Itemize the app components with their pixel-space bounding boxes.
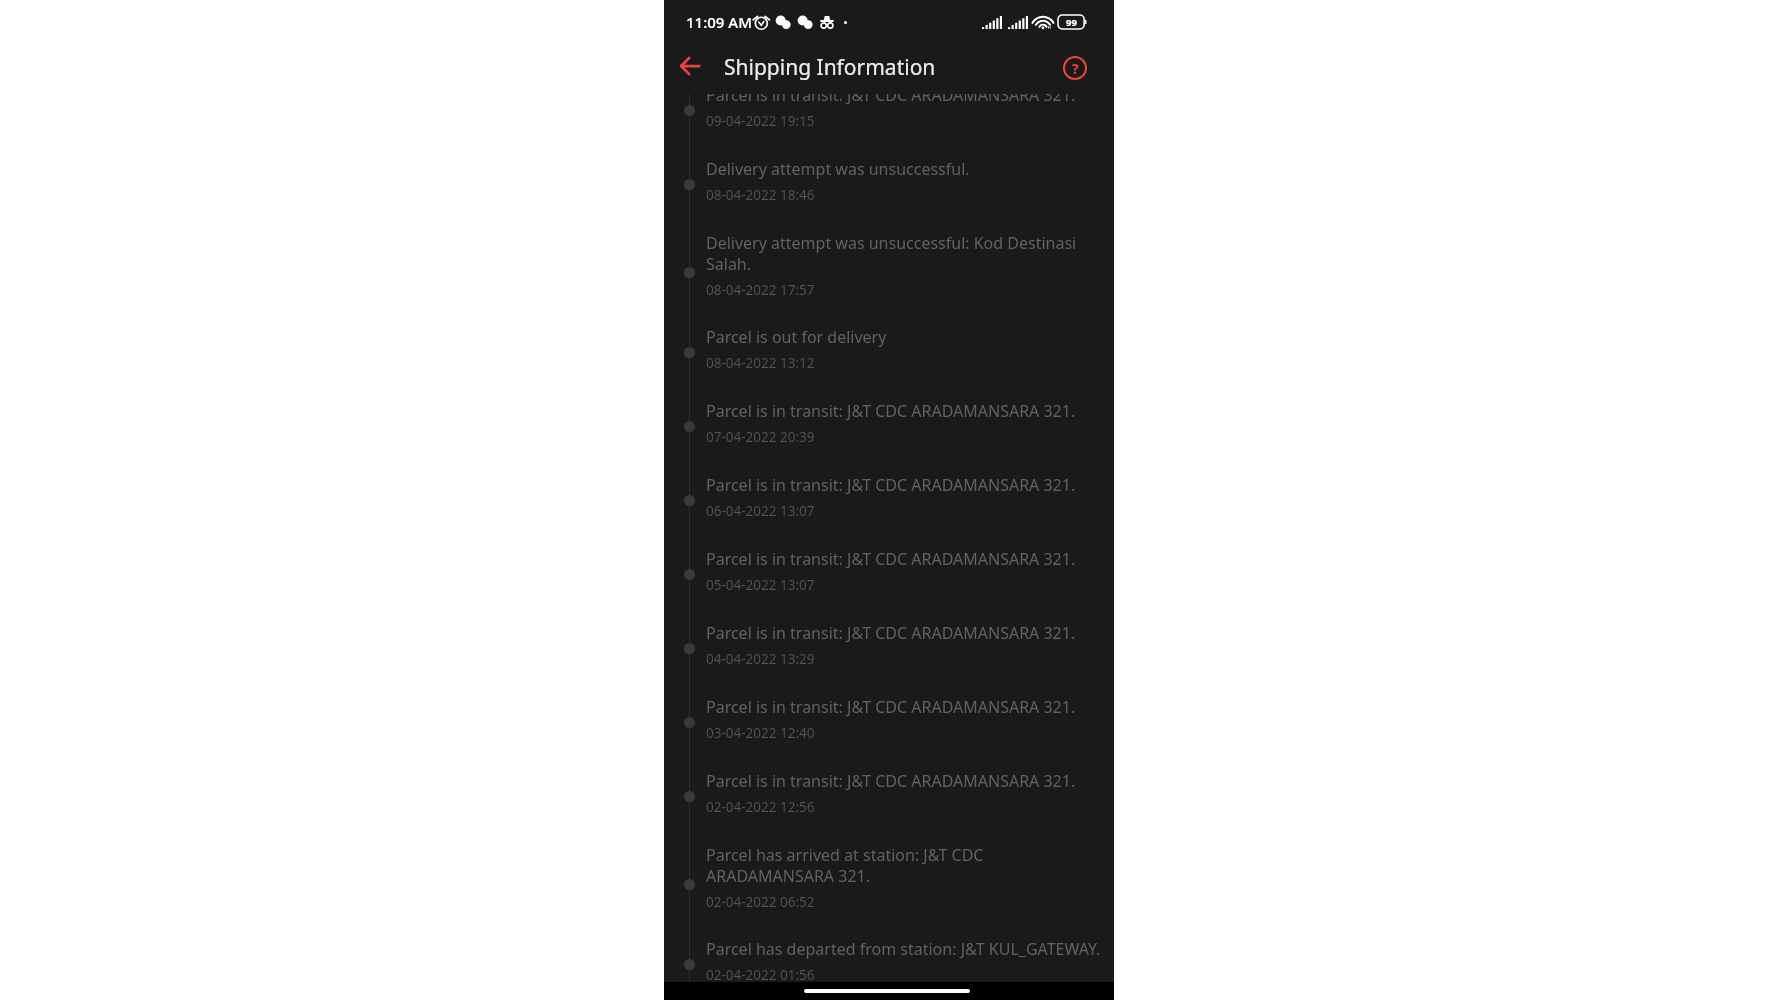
staticText: 06-04-2022 13:07 (706, 502, 815, 520)
staticText: 99 (1066, 16, 1077, 29)
staticText: 11:09 AM (686, 12, 752, 32)
staticText: 02-04-2022 06:52 (706, 893, 815, 911)
staticText: 07-04-2022 20:39 (706, 428, 815, 446)
button[interactable]: Parcel is in transit: J&T CDC ARADAMANSA… (664, 612, 1114, 686)
button[interactable]: Parcel is in transit: J&T CDC ARADAMANSA… (664, 94, 1114, 148)
staticText: Parcel is in transit: J&T CDC ARADAMANSA… (706, 548, 1076, 570)
staticText: 09-04-2022 19:15 (706, 112, 815, 130)
staticText: 02-04-2022 01:56 (706, 966, 815, 982)
staticText: 08-04-2022 17:57 (706, 281, 815, 299)
staticText: ? (1072, 59, 1079, 78)
staticText: Parcel is out for delivery (706, 326, 887, 348)
button[interactable]: Help (1060, 53, 1090, 83)
button[interactable]: Delivery attempt was unsuccessful: Kod D… (664, 222, 1114, 316)
button[interactable]: Parcel is in transit: J&T CDC ARADAMANSA… (664, 760, 1114, 834)
staticText: Delivery attempt was unsuccessful. (706, 158, 970, 180)
staticText: 03-04-2022 12:40 (706, 724, 815, 742)
button[interactable]: Parcel is in transit: J&T CDC ARADAMANSA… (664, 538, 1114, 612)
button[interactable]: Parcel has arrived at station: J&T CDC A… (664, 834, 1114, 928)
staticText: Parcel is in transit: J&T CDC ARADAMANSA… (706, 696, 1076, 718)
staticText: Parcel is in transit: J&T CDC ARADAMANSA… (706, 474, 1076, 496)
staticText: 08-04-2022 18:46 (706, 186, 815, 204)
button[interactable]: Parcel has departed from station: J&T KU… (664, 928, 1114, 982)
staticText: Parcel has departed from station: J&T KU… (706, 938, 1101, 960)
button[interactable]: Parcel is in transit: J&T CDC ARADAMANSA… (664, 686, 1114, 760)
staticText: 04-04-2022 13:29 (706, 650, 815, 668)
staticText: 08-04-2022 13:12 (706, 354, 815, 372)
staticText: Parcel is in transit: J&T CDC ARADAMANSA… (706, 622, 1076, 644)
staticText: Shipping Information (724, 53, 936, 82)
button[interactable]: Parcel is out for delivery (664, 316, 1114, 390)
staticText: Delivery attempt was unsuccessful: Kod D… (706, 232, 1108, 275)
button[interactable]: Delivery attempt was unsuccessful. (664, 148, 1114, 222)
button[interactable]: Back (670, 46, 710, 86)
staticText: Parcel is in transit: J&T CDC ARADAMANSA… (706, 770, 1076, 792)
staticText: Parcel is in transit: J&T CDC ARADAMANSA… (706, 94, 1076, 106)
staticText: Parcel is in transit: J&T CDC ARADAMANSA… (706, 400, 1076, 422)
staticText: 05-04-2022 13:07 (706, 576, 815, 594)
staticText: 02-04-2022 12:56 (706, 798, 815, 816)
button[interactable]: Parcel is in transit: J&T CDC ARADAMANSA… (664, 464, 1114, 538)
button[interactable]: Parcel is in transit: J&T CDC ARADAMANSA… (664, 390, 1114, 464)
staticText: Parcel has arrived at station: J&T CDC A… (706, 844, 1108, 887)
